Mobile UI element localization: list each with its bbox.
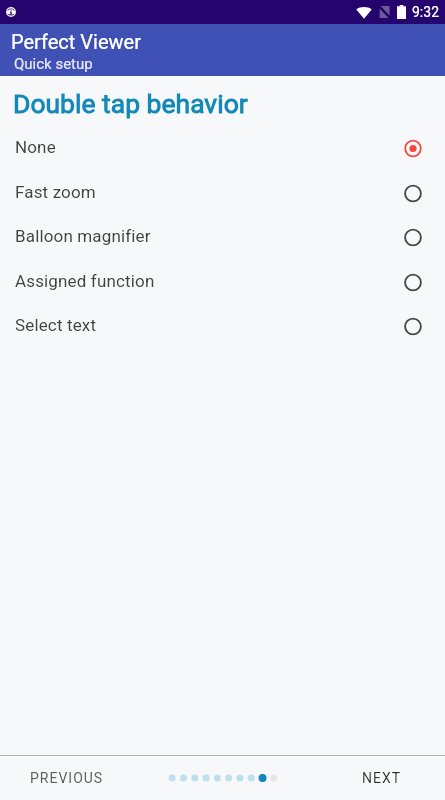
staticText: Fast zoom — [15, 182, 96, 202]
other: App icon — [6, 4, 16, 20]
staticText: PREVIOUS — [30, 770, 104, 786]
staticText: Select text — [15, 315, 97, 335]
staticText: Balloon magnifier — [15, 226, 151, 246]
other: Battery full — [397, 5, 406, 19]
button[interactable]: NEXT — [350, 761, 414, 795]
other: No SIM card — [379, 6, 390, 18]
staticText: Quick setup — [14, 55, 93, 73]
other: Wi-Fi — [356, 6, 372, 19]
staticText: Assigned function — [15, 271, 155, 291]
staticText: None — [15, 137, 56, 157]
button[interactable]: Fast zoom — [0, 170, 445, 215]
button[interactable]: PREVIOUS — [18, 761, 116, 795]
staticText: Double tap behavior — [13, 88, 248, 119]
button[interactable]: Balloon magnifier — [0, 214, 445, 259]
button[interactable]: Select text — [0, 303, 445, 348]
staticText: Perfect Viewer — [11, 30, 141, 53]
button[interactable]: Assigned function — [0, 259, 445, 304]
staticText: NEXT — [362, 770, 402, 786]
other: Page 9 of 10 — [163, 772, 283, 784]
staticText: 9:32 — [412, 4, 439, 20]
button[interactable]: None — [0, 125, 445, 170]
